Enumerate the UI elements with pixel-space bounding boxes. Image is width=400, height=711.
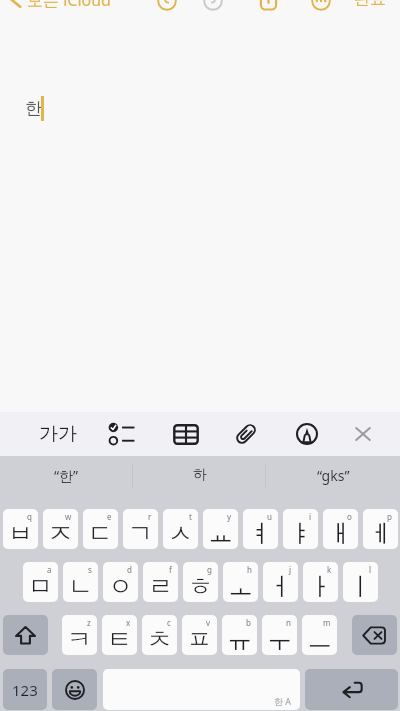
button[interactable]: Undo — [157, 0, 177, 11]
staticText: “한” — [54, 466, 79, 485]
staticText: ㅏ — [308, 571, 333, 602]
button[interactable]: 완료 — [354, 0, 386, 9]
button[interactable]: c — [142, 615, 177, 655]
staticText: ㅍ — [187, 624, 212, 655]
staticText: ㅌ — [107, 624, 132, 655]
other: Markup — [296, 423, 318, 445]
staticText: ㄱ — [128, 518, 153, 549]
staticText: d — [127, 564, 132, 575]
staticText: v — [206, 617, 211, 628]
staticText: k — [327, 564, 332, 575]
button[interactable]: 가가 — [36, 412, 80, 456]
button[interactable]: 한 A — [103, 669, 300, 710]
staticText: x — [126, 617, 131, 628]
button[interactable]: v — [182, 615, 217, 655]
button[interactable]: k — [303, 562, 338, 602]
button[interactable]: u — [243, 509, 278, 549]
staticText: a — [47, 564, 52, 575]
button[interactable]: l — [343, 562, 378, 602]
other: Close keyboard — [353, 424, 373, 444]
staticText: c — [167, 617, 171, 628]
staticText: ㄹ — [148, 571, 173, 602]
staticText: ㅜ — [267, 624, 292, 655]
staticText: ㄷ — [88, 518, 113, 549]
button[interactable]: Emoji — [52, 669, 97, 710]
staticText: 가가 — [39, 422, 77, 446]
button[interactable]: e — [83, 509, 118, 549]
staticText: ㅊ — [147, 624, 172, 655]
button[interactable]: y — [203, 509, 238, 549]
staticText: t — [189, 511, 192, 522]
button[interactable]: b — [222, 615, 257, 655]
other: Attach — [234, 422, 258, 446]
button[interactable]: n — [262, 615, 297, 655]
staticText: r — [148, 511, 152, 522]
staticText: b — [246, 617, 251, 628]
button[interactable]: h — [223, 562, 258, 602]
staticText: ㅅ — [168, 518, 193, 549]
button[interactable]: x — [102, 615, 137, 655]
button[interactable]: d — [103, 562, 138, 602]
button[interactable]: Table — [164, 412, 208, 456]
staticText: m — [323, 617, 331, 628]
staticText: 모든 iCloud — [27, 0, 111, 9]
button[interactable]: o — [323, 509, 358, 549]
button[interactable]: r — [123, 509, 158, 549]
staticText: p — [387, 511, 392, 522]
button[interactable]: Redo — [203, 0, 223, 11]
staticText: ㅈ — [48, 518, 73, 549]
staticText: e — [107, 511, 112, 522]
staticText: ㄴ — [68, 571, 93, 602]
staticText: f — [169, 564, 172, 575]
button[interactable]: q — [3, 509, 38, 549]
staticText: 한 — [25, 98, 42, 119]
staticText: ㅋ — [67, 624, 92, 655]
staticText: ㅡ — [307, 624, 332, 655]
button[interactable]: More — [311, 0, 331, 11]
staticText: “gks” — [317, 466, 350, 485]
button[interactable]: “한” — [0, 456, 133, 494]
button[interactable]: Markup — [285, 412, 329, 456]
button[interactable]: 모든 iCloud — [9, 0, 111, 9]
staticText: 123 — [12, 680, 38, 700]
staticText: ㅣ — [348, 571, 373, 602]
button[interactable]: Checklist — [99, 412, 143, 456]
staticText: ㅐ — [328, 518, 353, 549]
button[interactable]: Shift — [3, 615, 48, 655]
button[interactable]: m — [302, 615, 337, 655]
staticText: ㅛ — [208, 518, 233, 549]
button[interactable]: Return — [305, 669, 398, 710]
other: Table — [173, 424, 199, 445]
staticText: ㅓ — [268, 571, 293, 602]
staticText: 하 — [193, 466, 207, 484]
staticText: u — [267, 511, 272, 522]
button[interactable]: Backspace — [352, 615, 397, 655]
staticText: s — [88, 564, 92, 575]
staticText: ㅎ — [188, 571, 213, 602]
button[interactable]: 하 — [133, 456, 266, 494]
button[interactable]: j — [263, 562, 298, 602]
button[interactable]: w — [43, 509, 78, 549]
staticText: 완료 — [354, 0, 386, 9]
button[interactable]: z — [62, 615, 97, 655]
button[interactable]: g — [183, 562, 218, 602]
staticText: g — [207, 564, 212, 575]
staticText: y — [227, 511, 232, 522]
staticText: n — [286, 617, 291, 628]
button[interactable]: Close keyboard — [341, 412, 385, 456]
button[interactable]: New note — [259, 0, 278, 11]
button[interactable]: p — [363, 509, 398, 549]
button[interactable]: i — [283, 509, 318, 549]
button[interactable]: f — [143, 562, 178, 602]
button[interactable]: Attach — [224, 412, 268, 456]
staticText: ㅔ — [368, 518, 393, 549]
staticText: h — [247, 564, 252, 575]
staticText: ㅑ — [288, 518, 313, 549]
button[interactable]: t — [163, 509, 198, 549]
staticText: ㅁ — [28, 571, 53, 602]
staticText: ㅕ — [248, 518, 273, 549]
button[interactable]: a — [23, 562, 58, 602]
button[interactable]: “gks” — [266, 456, 400, 494]
button[interactable]: s — [63, 562, 98, 602]
button[interactable]: 123 — [3, 669, 47, 710]
